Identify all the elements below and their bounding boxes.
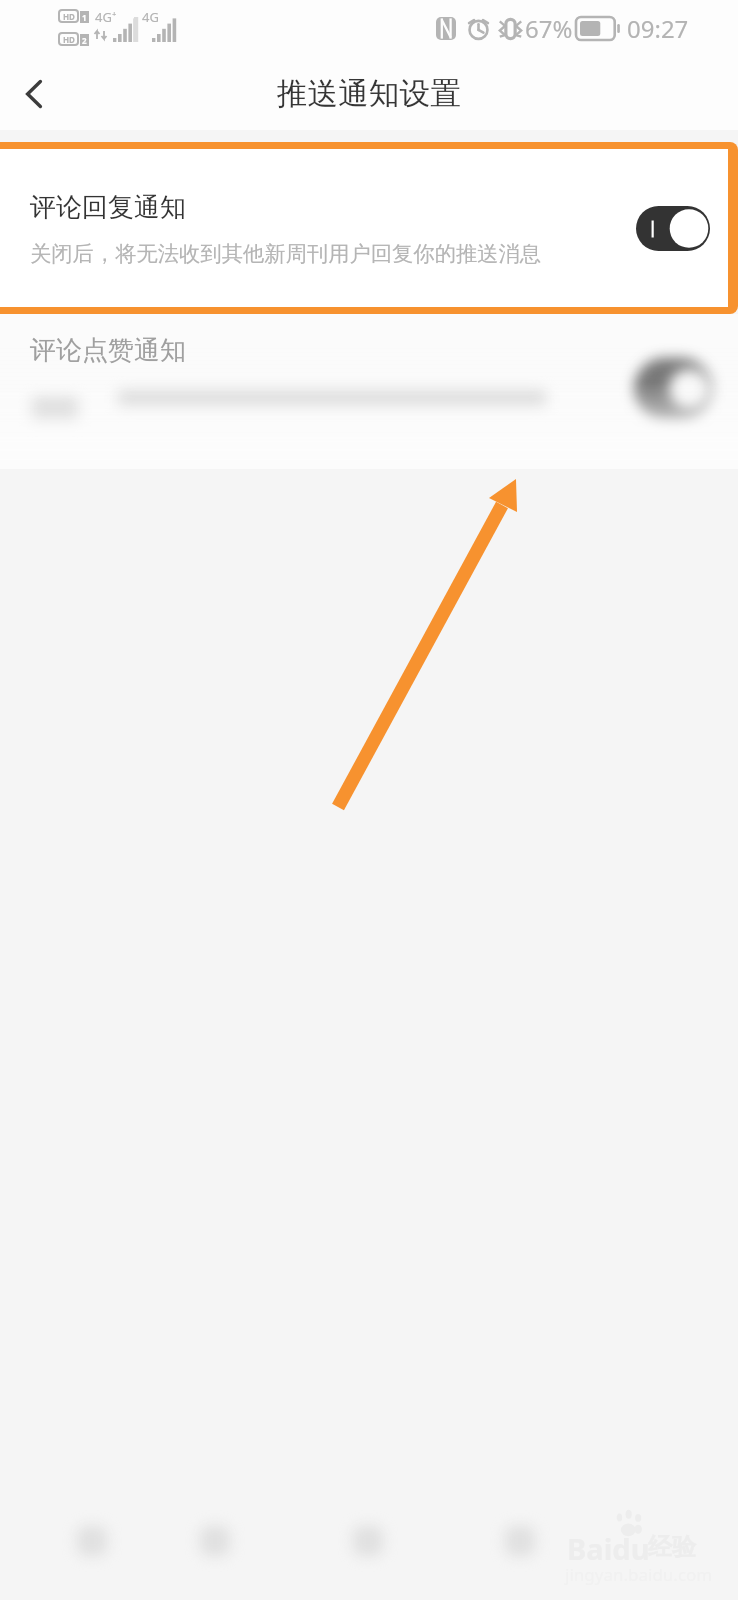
staticText: 评论回复通知 — [30, 191, 186, 224]
staticText: 推送通知设置 — [277, 75, 461, 114]
button[interactable]: Notifications — [368, 1500, 553, 1600]
staticText: 评论点赞通知 — [30, 334, 186, 367]
staticText: 关闭后，将无法收到其他新周刊用户回复你的推送消息 — [30, 240, 542, 267]
button[interactable]: Home — [0, 1500, 184, 1600]
button[interactable]: Toggle comment reply notification — [636, 206, 710, 251]
staticText: 4G⁺ — [95, 8, 117, 26]
staticText: 经验 — [648, 1532, 696, 1562]
staticText: 2 — [82, 35, 87, 46]
staticText: 09:27 — [627, 12, 689, 45]
staticText: 67% — [525, 12, 573, 45]
staticText: Baidu — [567, 1529, 650, 1568]
button[interactable]: 评论点赞通知 — [0, 314, 738, 469]
button[interactable]: 评论回复通知 — [0, 149, 728, 307]
staticText: HD — [63, 34, 75, 44]
staticText: 1 — [82, 12, 87, 23]
staticText: HD — [63, 11, 75, 21]
staticText: 4G — [142, 8, 159, 26]
button[interactable]: Back — [6, 66, 62, 122]
button[interactable]: Discover — [184, 1500, 368, 1600]
